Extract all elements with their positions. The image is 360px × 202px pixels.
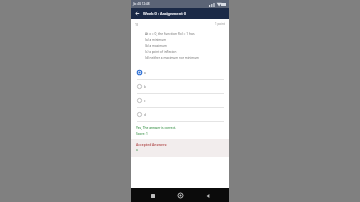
button[interactable]: Back: [133, 9, 142, 18]
staticText: (a) a minimum: [145, 38, 167, 42]
staticText: (b) a maximum: [145, 44, 167, 48]
staticText: a: [144, 71, 146, 75]
staticText: Jio 4G 12:48: [133, 2, 150, 6]
button[interactable]: a: [131, 66, 229, 80]
staticText: a: [136, 148, 138, 152]
staticText: Yes, The answer is correct.: [136, 126, 177, 130]
staticText: c: [144, 99, 146, 103]
staticText: d: [144, 113, 146, 117]
staticText: (d) neither a maximum nor minimum: [145, 56, 199, 60]
staticText: b: [144, 85, 146, 89]
staticText: 1 point: [215, 22, 225, 26]
staticText: Week 0 : Assignment 0: [143, 11, 187, 16]
staticText: Score: 1: [136, 132, 148, 136]
staticText: At x = 0, the function f(x) = 1 has: [145, 31, 195, 35]
staticText: Accepted Answers:: [136, 142, 168, 146]
button[interactable]: b: [131, 80, 229, 94]
button[interactable]: Back: [202, 190, 213, 201]
button[interactable]: c: [131, 94, 229, 108]
staticText: (c) a point of inflexion: [145, 50, 177, 54]
button[interactable]: d: [131, 108, 229, 122]
button[interactable]: Home: [175, 190, 186, 201]
button[interactable]: Recents: [147, 190, 158, 201]
staticText: 1): [135, 22, 139, 27]
